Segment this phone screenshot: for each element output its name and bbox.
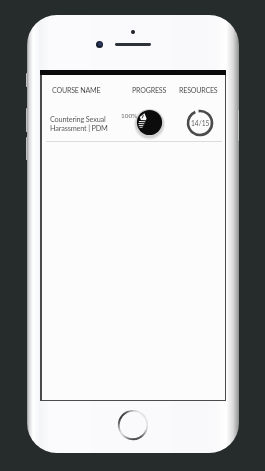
staticText: Countering Sexual Harassment | PDM bbox=[50, 115, 108, 133]
staticText: COURSE NAME bbox=[52, 86, 101, 95]
staticText: PROGRESS bbox=[132, 86, 167, 95]
staticText: RESOURCES bbox=[179, 86, 218, 95]
button[interactable]: 14/15 bbox=[186, 109, 214, 137]
button[interactable]: COURSE NAME bbox=[48, 82, 97, 91]
button[interactable]: Course progress 100 percent bbox=[136, 109, 163, 136]
staticText: 100% bbox=[121, 112, 138, 120]
button[interactable]: Home bbox=[117, 409, 149, 441]
staticText: 14/15 bbox=[191, 119, 210, 127]
button[interactable]: Countering Sexual Harassment | PDM bbox=[42, 104, 225, 142]
button[interactable]: RESOURCES bbox=[175, 82, 214, 91]
button[interactable]: PROGRESS bbox=[128, 82, 163, 91]
